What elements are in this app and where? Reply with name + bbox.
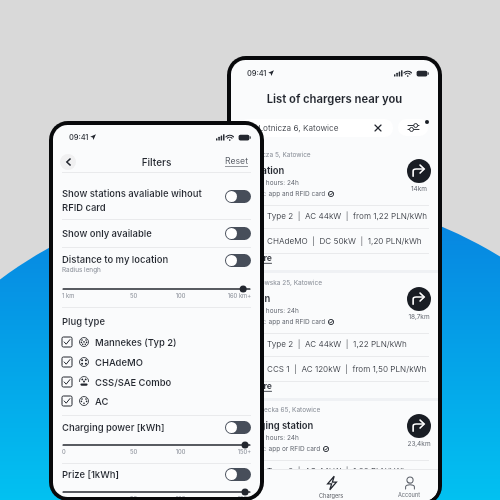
- staticText: 100: [157, 292, 204, 299]
- staticText: Station: [238, 293, 271, 304]
- button[interactable]: Toggle setting: [225, 254, 251, 267]
- staticText: Type 2 | AC 44kW | 1,22 PLN/kWh: [267, 339, 407, 349]
- staticText: CSS/SAE Combo: [95, 377, 172, 388]
- staticText: Type 2 | AC 44kW | from 1,22 PLN/kWh: [267, 211, 427, 221]
- button[interactable]: Type 2 | AC 44kW | 1,22 PLN/kWh: [231, 464, 438, 469]
- button[interactable]: Chargers: [310, 470, 352, 500]
- button[interactable]: Open filters: [398, 119, 428, 136]
- staticText: ul. Lotnicza 6, Katowice: [247, 123, 339, 133]
- staticText: 150+: [204, 448, 251, 455]
- staticText: Filters: [53, 156, 260, 168]
- staticText: 100: [157, 448, 204, 455]
- staticText: Type 2 | AC 44kW | 1,22 PLN/kWh: [267, 466, 407, 469]
- staticText: More: [250, 253, 272, 264]
- staticText: Prize [1kWh]: [62, 469, 120, 480]
- button[interactable]: Account: [388, 470, 430, 500]
- staticText: Charging power [kWh]: [62, 422, 165, 433]
- staticText: Chargers: [319, 493, 344, 500]
- staticText: Reset: [225, 156, 249, 167]
- staticText: 50: [110, 495, 157, 497]
- staticText: Payment: app or RFID card: [238, 445, 321, 453]
- button[interactable]: Navigate to charger: [407, 414, 431, 438]
- staticText: Opening hours: 24h: [238, 434, 299, 442]
- staticText: ul. Sosniecka 65, Katowice: [238, 406, 321, 414]
- staticText: 1 km: [62, 292, 110, 299]
- staticText: 18,7km: [404, 313, 434, 321]
- staticText: Show stations avaliable wihout RFID card: [62, 188, 204, 213]
- staticText: Go station: [238, 165, 285, 176]
- button[interactable]: Back: [60, 154, 76, 170]
- staticText: CCS 1 | AC 120kW | from 1,50 PLN/kWh: [267, 364, 427, 374]
- staticText: 0: [62, 495, 110, 497]
- staticText: ul. Bytkowska 25, Katowice: [238, 279, 322, 287]
- button[interactable]: Toggle setting: [225, 421, 251, 434]
- staticText: 100: [157, 495, 204, 497]
- staticText: 0: [62, 448, 110, 455]
- button[interactable]: CCS 1 | AC 120kW | from 1,50 PLN/kWh: [231, 362, 438, 376]
- staticText: AC: [95, 396, 109, 407]
- staticText: 14km: [404, 185, 434, 193]
- button[interactable]: Toggle setting: [225, 190, 251, 203]
- staticText: Payment: app and RFID card: [238, 318, 326, 326]
- staticText: CHAdeMO | DC 50kW | 1,20 PLN/kWh: [267, 236, 422, 246]
- staticText: Account: [398, 492, 421, 499]
- button[interactable]: CHAdeMO: [53, 354, 260, 370]
- staticText: List of chargers near you: [231, 92, 438, 106]
- button[interactable]: Type 2 | AC 44kW | from 1,22 PLN/kWh: [231, 209, 438, 223]
- button[interactable]: Type 2 | AC 44kW | 1,22 PLN/kWh: [231, 337, 438, 351]
- button[interactable]: More: [250, 381, 272, 392]
- staticText: Plug type: [62, 316, 105, 327]
- staticText: ul. Lotnicza 5, Katowice: [238, 151, 311, 159]
- button[interactable]: Mannekes (Typ 2): [53, 334, 260, 350]
- button[interactable]: More: [250, 253, 272, 264]
- button[interactable]: Toggle setting: [225, 468, 251, 481]
- button[interactable]: Toggle setting: [225, 227, 251, 240]
- staticText: Radius lengh: [62, 266, 101, 274]
- staticText: 150+: [204, 495, 251, 497]
- staticText: Opening hours: 24h: [238, 307, 299, 315]
- button[interactable]: AC: [53, 393, 260, 409]
- staticText: Charging station: [238, 420, 314, 431]
- staticText: More: [250, 381, 272, 392]
- staticText: CHAdeMO: [95, 357, 143, 368]
- staticText: 50: [110, 448, 157, 455]
- button[interactable]: ul. Lotnicza 6, Katowice: [239, 119, 393, 137]
- staticText: 50: [110, 292, 157, 299]
- button[interactable]: Show stations avaliable wihout RFID card: [53, 174, 260, 219]
- button[interactable]: Navigate to charger: [407, 287, 431, 311]
- button[interactable]: CHAdeMO | DC 50kW | 1,20 PLN/kWh: [231, 234, 438, 248]
- staticText: 09:41: [247, 69, 267, 78]
- staticText: Distance to my location: [62, 254, 169, 265]
- staticText: Payment: app and RFID card: [238, 190, 326, 198]
- staticText: Mannekes (Typ 2): [95, 337, 177, 348]
- button[interactable]: CSS/SAE Combo: [53, 374, 260, 390]
- staticText: 09:41: [69, 133, 89, 142]
- staticText: 23,4km: [404, 440, 434, 448]
- staticText: Opening hours: 24h: [238, 179, 299, 187]
- staticText: 160 km+: [204, 292, 251, 299]
- button[interactable]: Show only available: [53, 220, 260, 247]
- staticText: Show only available: [62, 228, 152, 239]
- button[interactable]: Navigate to charger: [407, 159, 431, 183]
- button[interactable]: Reset: [225, 156, 249, 167]
